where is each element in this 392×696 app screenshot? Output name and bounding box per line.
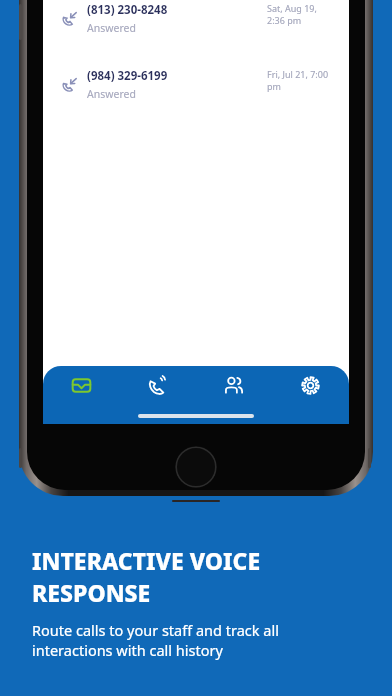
staticText: INTERACTIVE VOICE bbox=[32, 545, 261, 576]
button[interactable]: Calls bbox=[119, 366, 195, 404]
staticText: Answered bbox=[87, 87, 136, 101]
staticText: Route calls to your staff and track all bbox=[32, 620, 279, 640]
button[interactable]: (984) 329-6199 bbox=[43, 66, 349, 104]
staticText: Fri, Jul 21, 7:00 bbox=[267, 68, 329, 80]
staticText: (813) 230-8248 bbox=[87, 2, 168, 18]
staticText: RESPONSE bbox=[32, 577, 151, 608]
button[interactable]: (813) 230-8248 bbox=[43, 0, 349, 38]
button[interactable]: Contacts bbox=[195, 366, 272, 404]
staticText: 2:36 pm bbox=[267, 14, 302, 26]
staticText: interactions with call history bbox=[32, 640, 223, 660]
staticText: (984) 329-6199 bbox=[87, 68, 168, 84]
button[interactable]: Inbox bbox=[43, 366, 119, 404]
other: Home bbox=[175, 446, 217, 488]
staticText: Answered bbox=[87, 21, 136, 35]
button[interactable]: Settings bbox=[272, 366, 349, 404]
staticText: Sat, Aug 19, bbox=[267, 2, 317, 14]
staticText: pm bbox=[267, 80, 281, 92]
